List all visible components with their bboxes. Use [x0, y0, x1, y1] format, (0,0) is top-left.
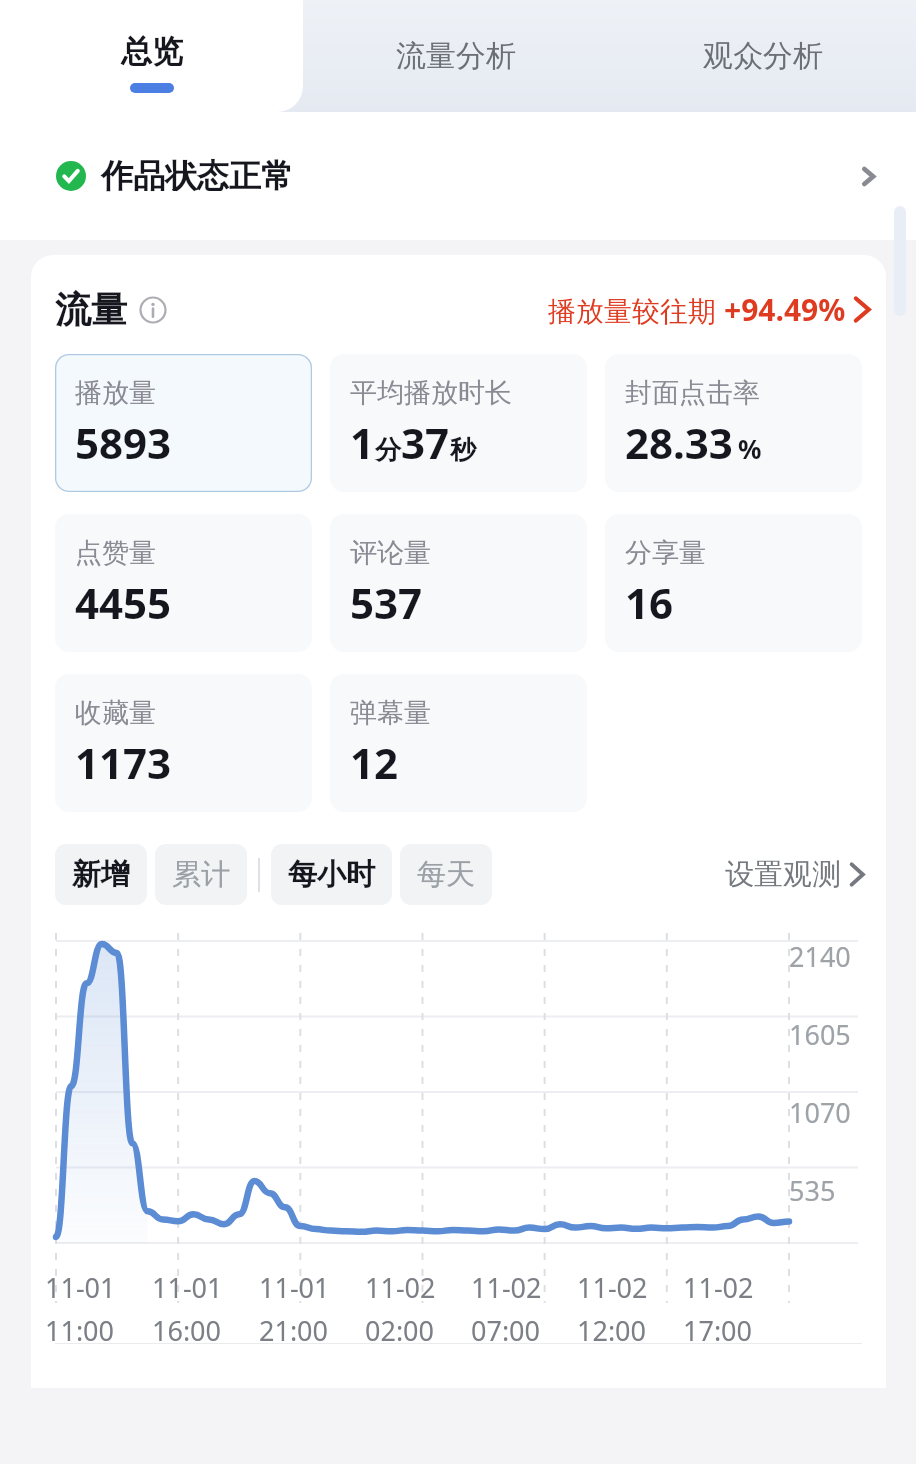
button[interactable]: 每小时	[271, 844, 392, 905]
staticText: 537	[350, 574, 423, 631]
staticText: 观众分析	[703, 37, 823, 75]
button[interactable]: 点赞量	[55, 514, 312, 652]
staticText: 播放量较往期	[548, 291, 724, 329]
staticText: 11-02	[365, 1269, 436, 1306]
staticText: 点赞量	[75, 536, 156, 570]
staticText: 12:00	[577, 1312, 647, 1349]
staticText: 作品状态正常	[101, 156, 293, 196]
staticText: 分享量	[625, 536, 706, 570]
button[interactable]: 播放量较往期	[548, 289, 870, 330]
staticText: %	[738, 431, 762, 466]
button[interactable]: 设置观测	[725, 856, 864, 893]
staticText: 封面点击率	[625, 376, 760, 410]
staticText: 1	[350, 414, 375, 471]
staticText: 535	[789, 1172, 836, 1209]
staticText: 收藏量	[75, 696, 156, 730]
staticText: 17:00	[683, 1312, 753, 1349]
staticText: 流量	[55, 287, 127, 332]
staticText: 11:00	[45, 1312, 115, 1349]
staticText: 每小时	[288, 856, 375, 893]
staticText: 秒	[450, 434, 476, 467]
staticText: 总览	[121, 32, 183, 71]
button[interactable]: 评论量	[330, 514, 587, 652]
button[interactable]: 累计	[155, 844, 247, 905]
staticText: 设置观测	[725, 856, 841, 893]
button[interactable]: 平均播放时长	[330, 354, 587, 492]
staticText: 21:00	[259, 1312, 329, 1349]
staticText: 分	[375, 434, 401, 467]
staticText: 11-02	[683, 1269, 754, 1306]
staticText: 16	[625, 574, 674, 631]
staticText: 28.33	[625, 414, 733, 471]
button[interactable]: 播放量	[55, 354, 312, 492]
button[interactable]: 收藏量	[55, 674, 312, 812]
staticText: 02:00	[365, 1312, 435, 1349]
button[interactable]: 分享量	[605, 514, 862, 652]
staticText: 1070	[789, 1094, 851, 1131]
staticText: 5893	[75, 414, 172, 471]
button[interactable]: 观众分析	[609, 0, 916, 112]
staticText: 新增	[72, 856, 130, 893]
staticText: 11-01	[152, 1269, 223, 1306]
button[interactable]: 作品状态正常	[0, 112, 916, 240]
staticText: 37	[401, 414, 450, 471]
staticText: 流量分析	[396, 37, 516, 75]
staticText: 1173	[75, 734, 172, 791]
button[interactable]: 说明	[139, 296, 167, 324]
staticText: +94.49%	[724, 289, 846, 330]
staticText: 4455	[75, 574, 172, 631]
staticText: 累计	[172, 856, 230, 893]
staticText: 2140	[789, 938, 851, 975]
staticText: 弹幕量	[350, 696, 431, 730]
staticText: 12	[350, 734, 399, 791]
button[interactable]: 封面点击率	[605, 354, 862, 492]
staticText: 11-01	[259, 1269, 330, 1306]
staticText: 11-02	[577, 1269, 648, 1306]
staticText: 平均播放时长	[350, 376, 512, 410]
staticText: 1605	[789, 1016, 851, 1053]
staticText: 每天	[417, 856, 475, 893]
staticText: 11-02	[471, 1269, 542, 1306]
button[interactable]: 新增	[55, 844, 147, 905]
staticText: 播放量	[75, 376, 156, 410]
button[interactable]: 弹幕量	[330, 674, 587, 812]
button[interactable]: 每天	[400, 844, 492, 905]
button[interactable]: 总览	[0, 0, 303, 112]
staticText: 07:00	[471, 1312, 541, 1349]
staticText: 16:00	[152, 1312, 222, 1349]
staticText: 11-01	[45, 1269, 116, 1306]
staticText: 评论量	[350, 536, 431, 570]
button[interactable]: 流量分析	[303, 0, 609, 112]
